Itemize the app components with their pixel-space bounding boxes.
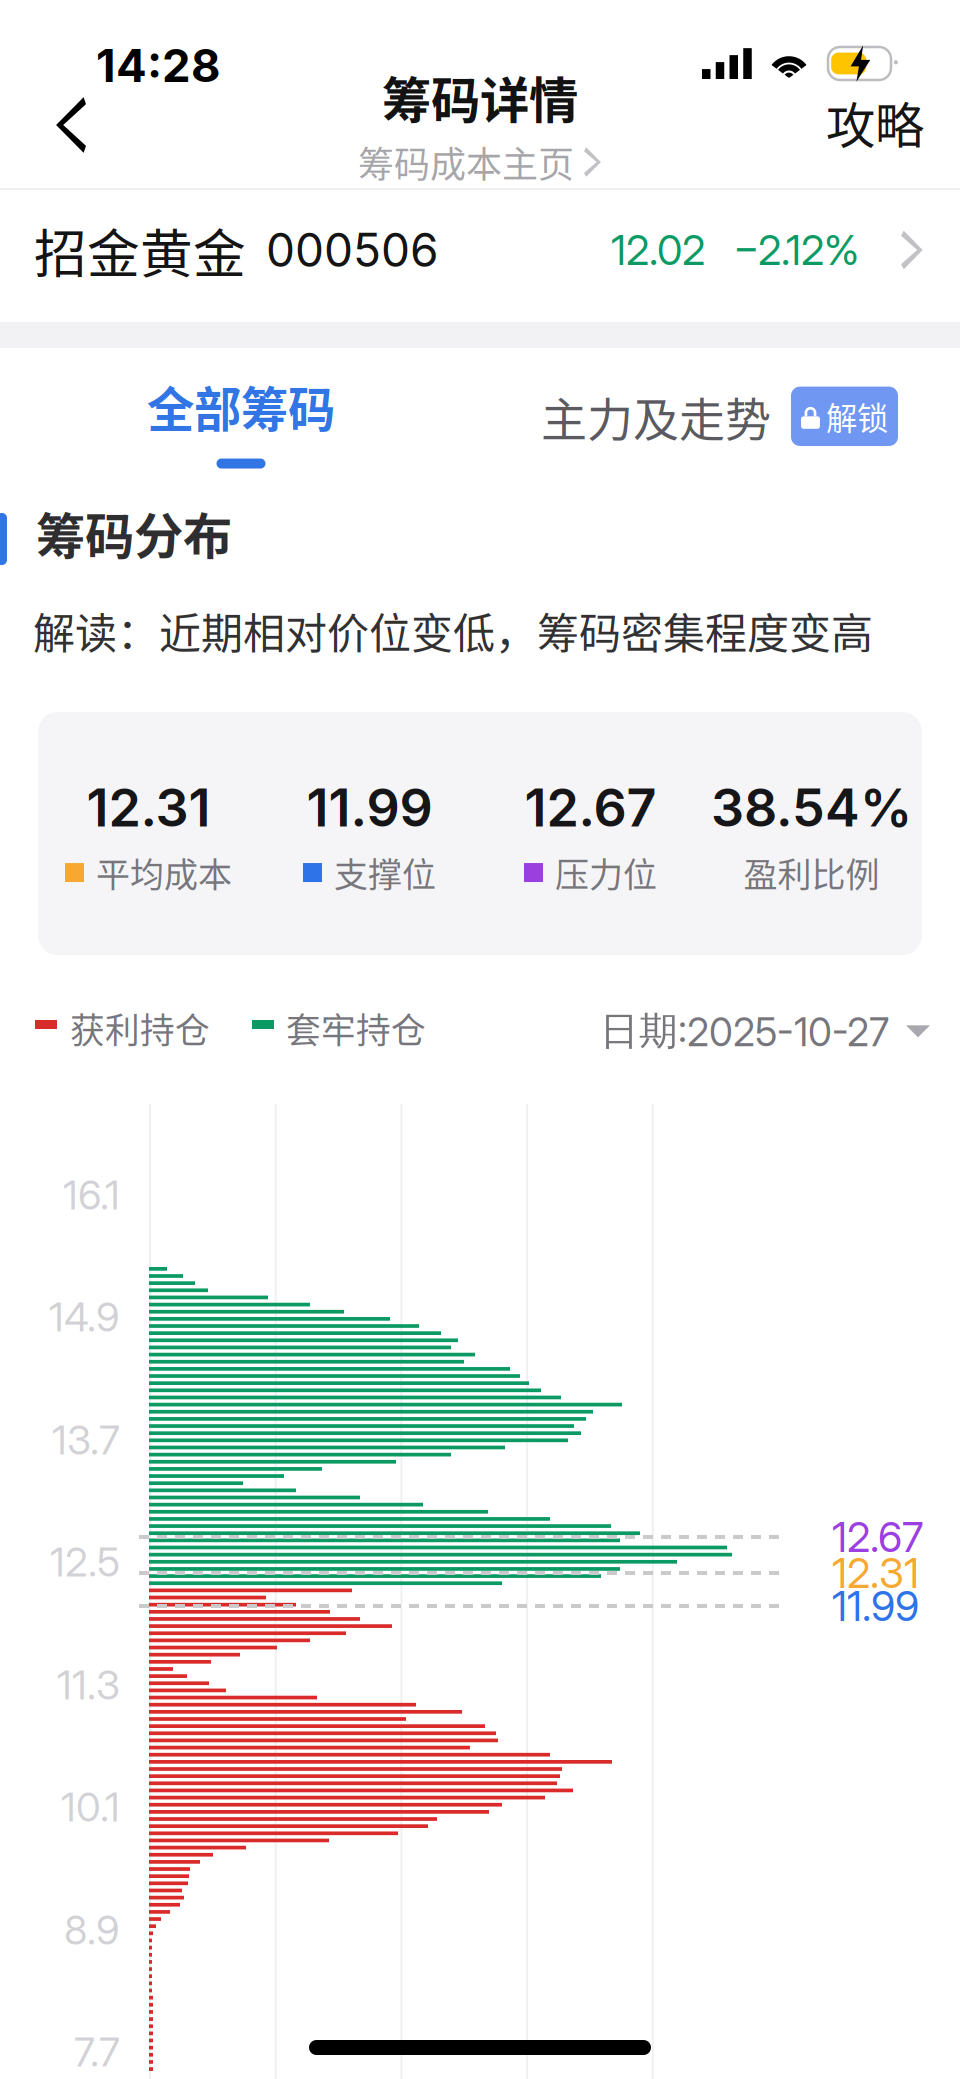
button[interactable]: 筹码成本主页	[358, 128, 602, 196]
button[interactable]: 主力及走势	[541, 369, 898, 464]
staticText: 筹码成本主页	[358, 136, 574, 188]
staticText: 解读：近期相对价位变低，筹码密集程度变高	[33, 600, 873, 661]
staticText: 日期:2025-10-27	[600, 1007, 889, 1056]
staticText: 12.31	[832, 1548, 919, 1598]
staticText: 12.67	[524, 776, 656, 839]
staticText: 14:28	[96, 38, 221, 93]
staticText: 38.54%	[711, 776, 912, 839]
staticText: 盈利比例	[743, 848, 879, 897]
staticText: 11.99	[306, 776, 432, 839]
staticText: 10.1	[61, 1783, 120, 1831]
staticText: −2.12%	[733, 225, 859, 275]
staticText: 14.9	[49, 1293, 120, 1341]
button[interactable]: 日期:2025-10-27	[600, 995, 930, 1068]
staticText: 筹码详情	[382, 61, 578, 132]
staticText: 主力及走势	[541, 383, 771, 450]
staticText: 套牢持仓	[286, 1003, 426, 1053]
button[interactable]: 攻略	[802, 74, 948, 170]
staticText: 12.67	[832, 1512, 923, 1562]
staticText: 16.1	[63, 1171, 120, 1219]
staticText: 8.9	[64, 1906, 120, 1954]
staticText: 11.3	[57, 1661, 120, 1709]
staticText: 招金黄金	[34, 212, 246, 288]
staticText: 解锁	[826, 394, 888, 439]
staticText: 11.99	[832, 1581, 919, 1631]
button[interactable]: 全部筹码	[125, 372, 357, 484]
staticText: 支撑位	[334, 848, 436, 897]
staticText: 000506	[266, 222, 439, 278]
staticText: 7.7	[74, 2028, 120, 2076]
staticText: 12.02	[611, 225, 705, 275]
staticText: 12.31	[86, 776, 210, 839]
staticText: 攻略	[826, 86, 924, 158]
staticText: 13.7	[52, 1416, 120, 1464]
button[interactable]: 招金黄金	[0, 184, 960, 316]
staticText: 压力位	[555, 848, 657, 897]
staticText: 全部筹码	[147, 372, 335, 440]
staticText: 12.5	[50, 1538, 120, 1586]
staticText: 平均成本	[96, 848, 232, 897]
button[interactable]: Back	[12, 72, 126, 178]
staticText: 筹码分布	[36, 497, 232, 568]
staticText: 获利持仓	[70, 1003, 210, 1053]
